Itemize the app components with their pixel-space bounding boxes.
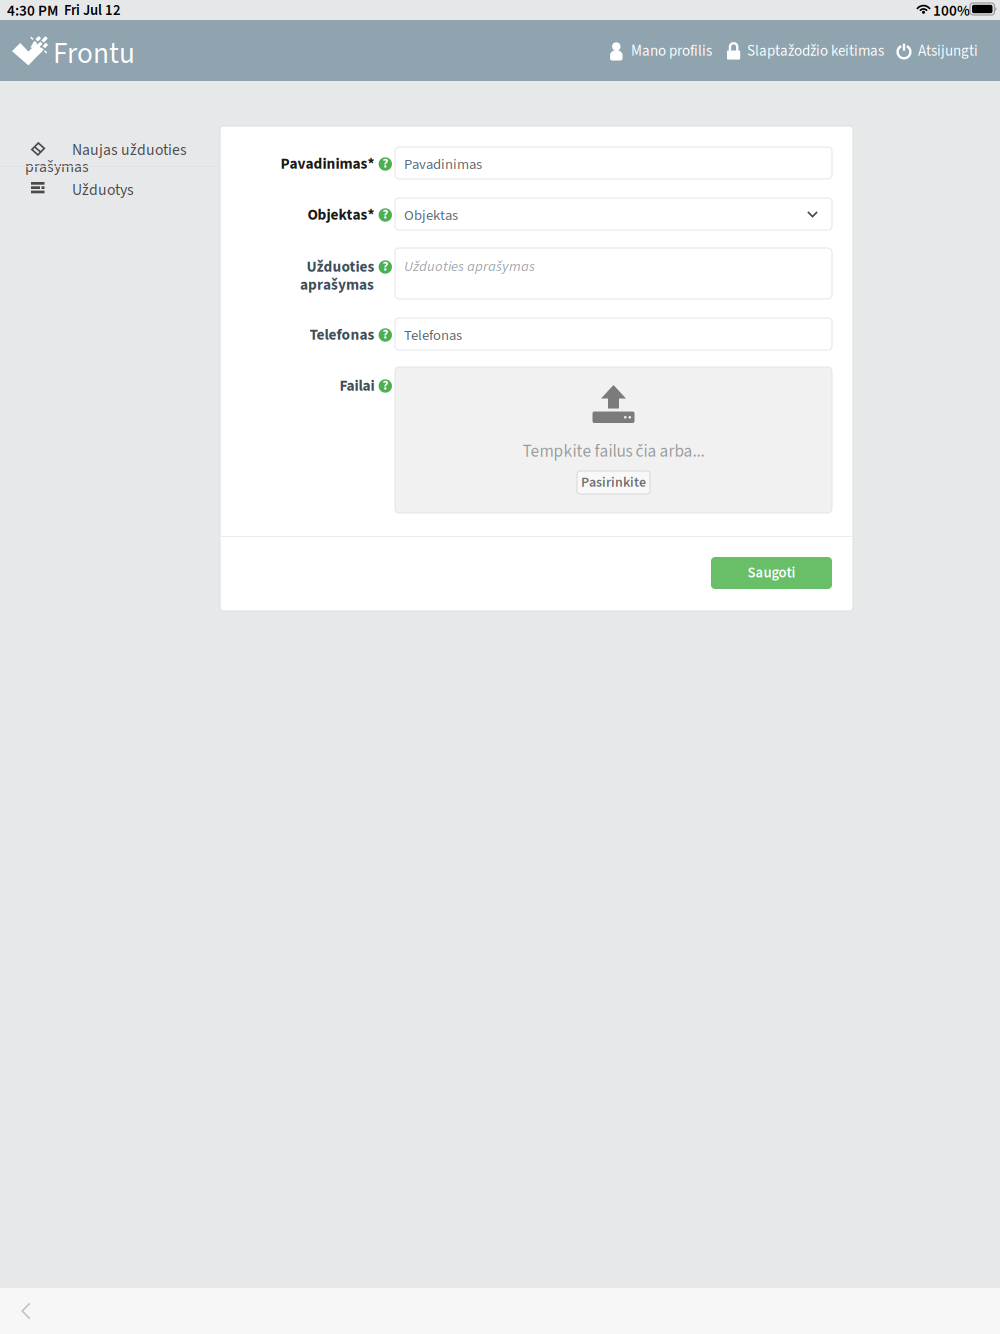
staticText: Frontu	[53, 33, 135, 75]
staticText: Mano profilis	[631, 40, 712, 62]
staticText: Užduoties	[307, 256, 375, 278]
button[interactable]: Naujas užduoties	[0, 139, 218, 179]
staticText: Telefonas	[310, 324, 375, 346]
staticText: Pavadinimas*	[281, 153, 375, 175]
staticText: prašymas	[25, 156, 89, 178]
staticText: Užduoties aprašymas	[404, 256, 535, 277]
button[interactable]: Atsijungti	[896, 35, 978, 67]
staticText: Failai	[340, 375, 375, 397]
staticText: Telefonas	[404, 325, 462, 346]
staticText: ?	[382, 205, 388, 224]
staticText: ?	[382, 325, 388, 344]
staticText: 100%	[933, 0, 970, 22]
staticText: Tempkite failus čia arba...	[522, 439, 704, 464]
button[interactable]: Užduotys	[0, 179, 218, 205]
staticText: Saugoti	[747, 563, 795, 583]
staticText: Atsijungti	[918, 40, 978, 62]
staticText: Užduotys	[72, 179, 134, 201]
staticText: ?	[382, 376, 388, 395]
button[interactable]: Back	[6, 1288, 46, 1334]
staticText: Pavadinimas	[404, 154, 482, 175]
staticText: Objektas	[404, 205, 458, 226]
staticText: Naujas užduoties	[72, 139, 187, 161]
staticText: Pasirinkite	[581, 472, 646, 492]
staticText: 4:30 PM	[7, 0, 58, 22]
button[interactable]: Slaptažodžio keitimas	[727, 35, 884, 67]
staticText: Slaptažodžio keitimas	[747, 40, 884, 62]
staticText: Fri Jul 12	[64, 0, 121, 21]
button[interactable]: Pasirinkite	[577, 471, 650, 494]
button[interactable]: Saugoti	[711, 557, 832, 589]
staticText: aprašymas	[300, 274, 374, 296]
staticText: Objektas*	[308, 204, 375, 226]
staticText: ?	[382, 257, 388, 276]
staticText: ?	[382, 154, 388, 173]
button[interactable]: Mano profilis	[608, 35, 712, 67]
